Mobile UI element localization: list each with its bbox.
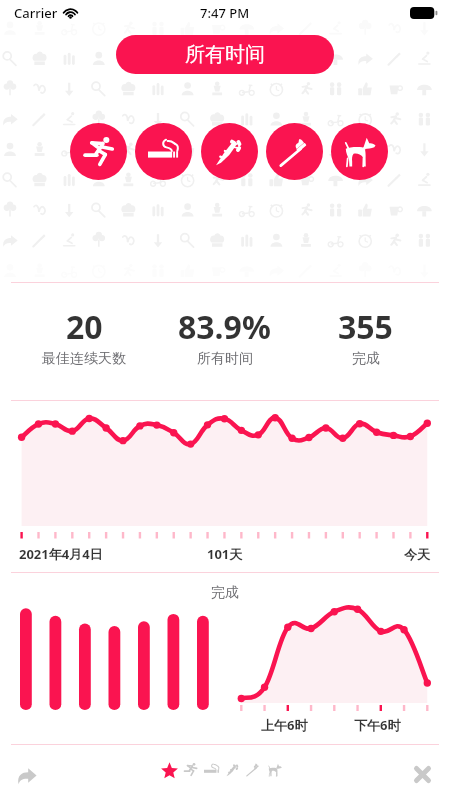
staticText: 所有时间 (185, 42, 265, 67)
staticText: 下午6时 (354, 716, 401, 734)
staticText: 355 (338, 305, 393, 349)
staticText: 83.9% (178, 305, 271, 349)
staticText: 20 (66, 305, 103, 349)
button[interactable]: Brush teeth (266, 123, 323, 180)
staticText: 今天 (404, 546, 430, 562)
button[interactable]: Eat healthy (201, 123, 258, 180)
button[interactable]: Share (11, 758, 42, 789)
button[interactable]: No smoking (201, 759, 222, 780)
staticText: 最佳连续天数 (42, 350, 126, 368)
staticText: 所有时间 (197, 350, 253, 368)
button[interactable]: Brush teeth (243, 759, 264, 780)
button[interactable]: Eat healthy (222, 759, 243, 780)
staticText: 7:47 PM (200, 4, 250, 22)
button[interactable]: Favourites (159, 759, 180, 780)
button[interactable]: Exercise (70, 123, 127, 180)
button[interactable]: Walk dog (264, 759, 285, 780)
button[interactable]: Walk dog (331, 123, 388, 180)
button[interactable]: Close (406, 758, 438, 790)
staticText: 完成 (0, 584, 450, 602)
staticText: Carrier (14, 4, 58, 22)
staticText: 完成 (352, 350, 380, 368)
button[interactable]: Exercise (180, 759, 201, 780)
staticText: 101天 (207, 545, 243, 563)
button[interactable]: No smoking (135, 123, 192, 180)
staticText: 上午6时 (261, 716, 308, 734)
button[interactable]: 所有时间 (116, 35, 334, 74)
staticText: 2021年4月4日 (19, 545, 103, 563)
